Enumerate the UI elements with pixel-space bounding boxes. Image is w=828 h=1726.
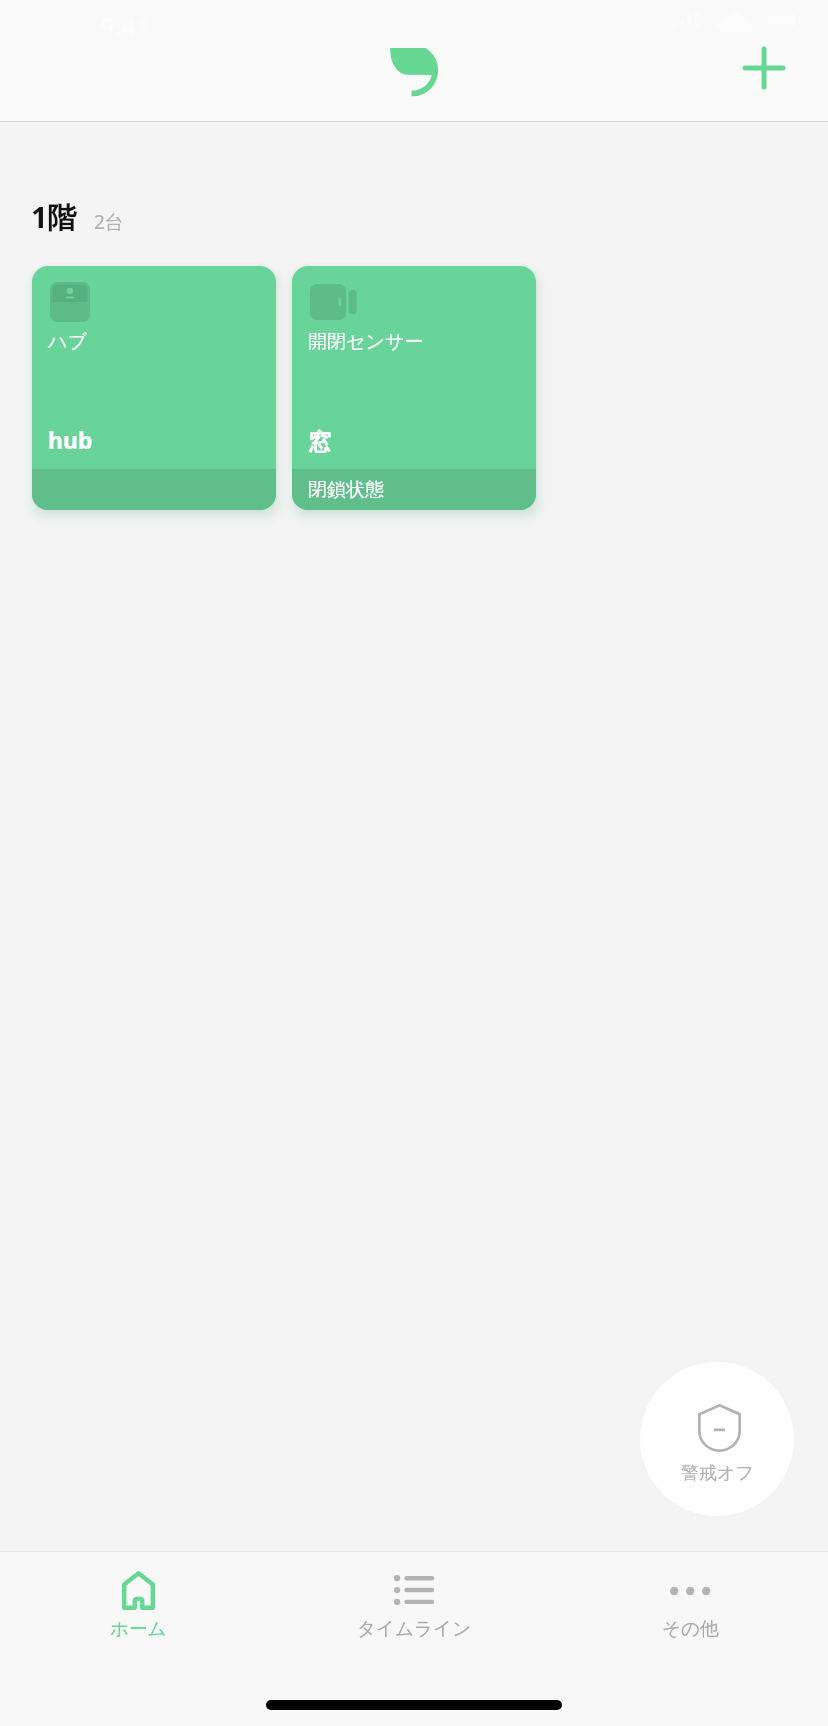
staticText: 1階 — [31, 197, 77, 237]
staticText: ハブ — [48, 330, 87, 354]
staticText: タイムライン — [357, 1617, 472, 1640]
staticText: 窓 — [308, 428, 331, 457]
staticText: 警戒オフ — [681, 1462, 754, 1485]
staticText: その他 — [662, 1617, 719, 1640]
button[interactable]: 開閉センサー — [292, 266, 536, 510]
button[interactable]: 警戒オフ — [640, 1362, 794, 1516]
button[interactable]: その他 — [570, 1552, 810, 1662]
staticText: 2台 — [94, 209, 124, 235]
button[interactable]: タイムライン — [294, 1552, 534, 1662]
button[interactable]: ホーム — [18, 1552, 258, 1662]
button[interactable]: ハブ — [32, 266, 276, 510]
staticText: ホーム — [110, 1617, 167, 1640]
staticText: 閉鎖状態 — [308, 478, 384, 502]
staticText: hub — [48, 424, 93, 455]
button[interactable]: Add device — [720, 29, 808, 106]
staticText: 開閉センサー — [308, 330, 424, 354]
